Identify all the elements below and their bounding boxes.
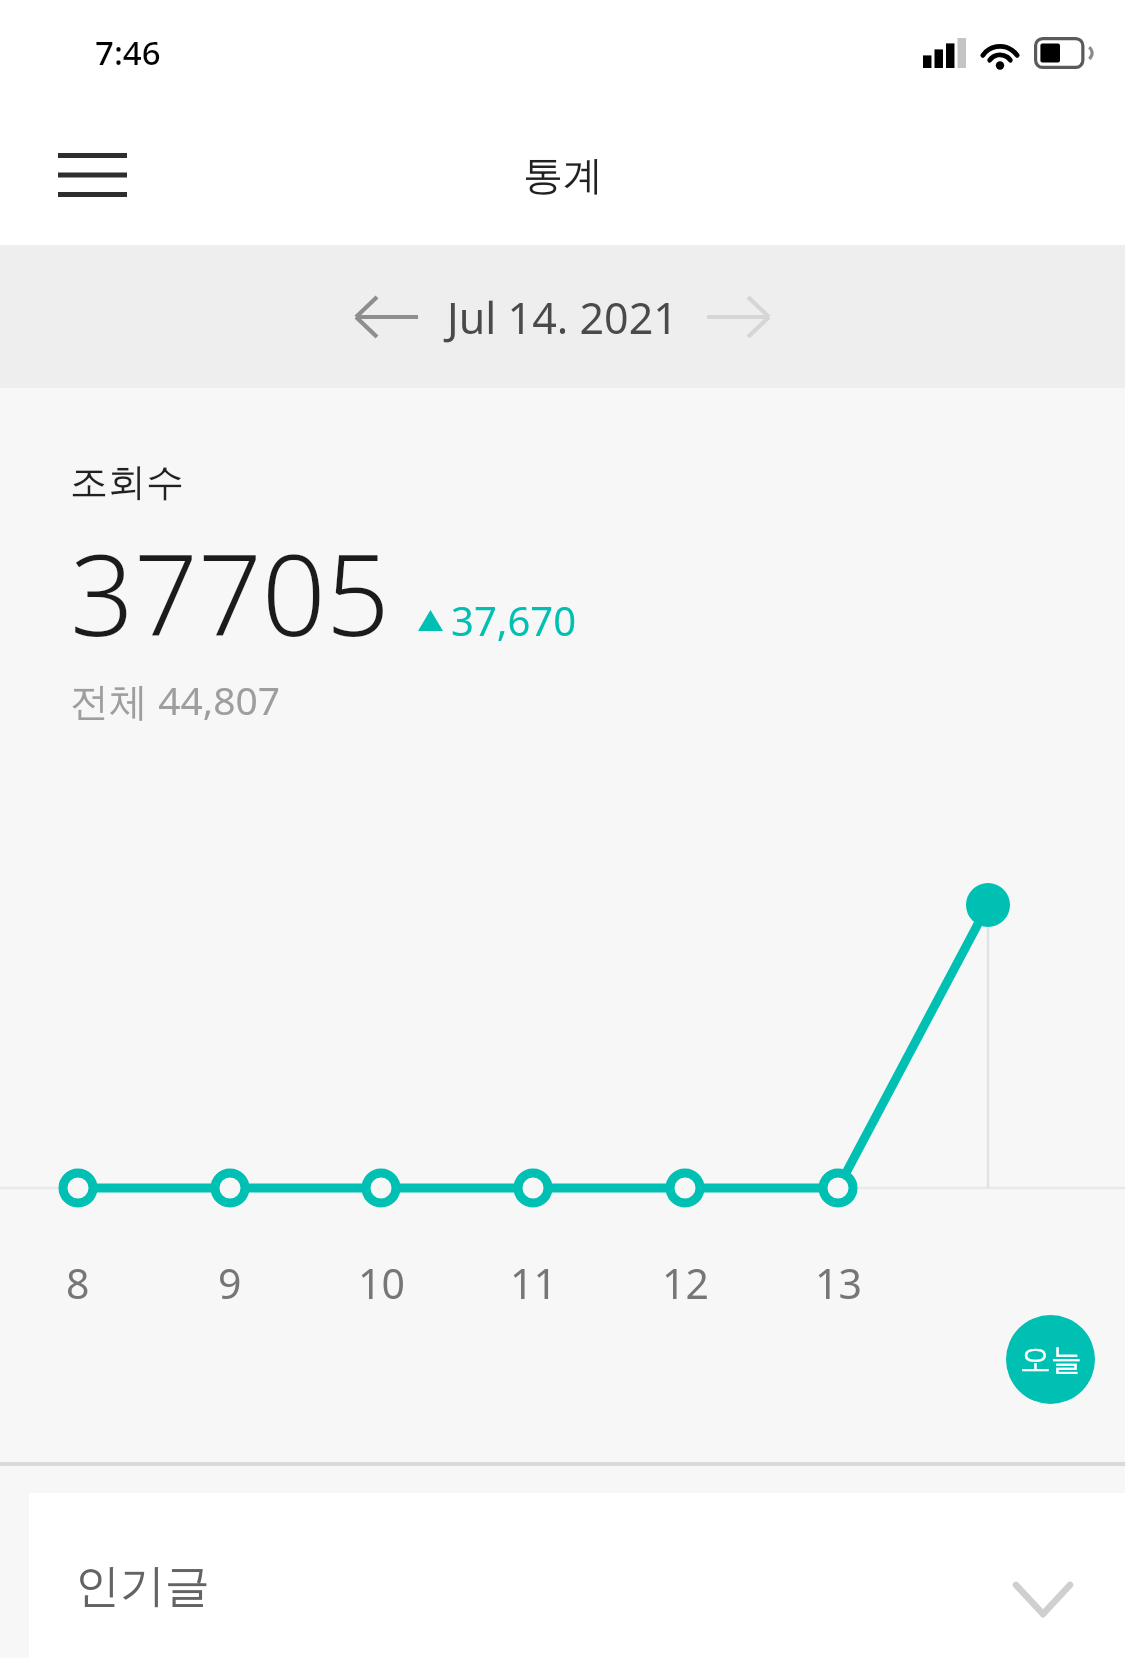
staticText: 통계 <box>523 150 603 200</box>
staticText: 오늘 <box>1020 1340 1082 1379</box>
staticText: 8 <box>66 1255 90 1311</box>
staticText: 11 <box>510 1255 557 1311</box>
staticText: 12 <box>662 1255 709 1311</box>
staticText: 7:46 <box>95 30 161 75</box>
button[interactable]: Next day <box>690 269 786 365</box>
staticText: 37705 <box>70 516 390 669</box>
staticText: 9 <box>218 1255 242 1311</box>
staticText: 10 <box>358 1255 405 1311</box>
staticText: Jul 14. 2021 <box>447 288 678 347</box>
button[interactable]: 오늘 <box>1006 1315 1095 1404</box>
staticText: 전체 44,807 <box>70 673 281 726</box>
other: Expand popular posts <box>997 1553 1089 1645</box>
button[interactable]: Previous day <box>339 269 435 365</box>
staticText: 조회수 <box>70 458 184 506</box>
staticText: 13 <box>815 1255 862 1311</box>
button[interactable]: Open navigation menu <box>36 125 148 225</box>
button[interactable]: 인기글 <box>29 1493 1125 1658</box>
staticText: 37,670 <box>451 593 577 647</box>
staticText: 인기글 <box>75 1558 210 1615</box>
